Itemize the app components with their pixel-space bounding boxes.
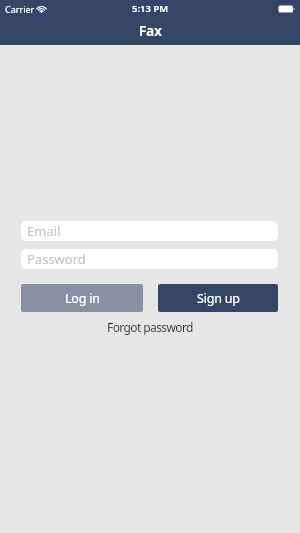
button[interactable]: Log in bbox=[21, 284, 143, 312]
button[interactable]: Sign up bbox=[158, 284, 278, 312]
staticText: Forgot password bbox=[107, 319, 193, 335]
staticText: 5:13 PM bbox=[132, 2, 169, 15]
staticText: Log in bbox=[65, 290, 100, 307]
staticText: Sign up bbox=[197, 290, 240, 307]
staticText: Email bbox=[27, 222, 61, 240]
staticText: Fax bbox=[139, 22, 162, 40]
staticText: Password bbox=[27, 250, 86, 268]
button[interactable]: Forgot password bbox=[103, 317, 197, 337]
button[interactable]: Email bbox=[21, 221, 278, 241]
staticText: Carrier bbox=[5, 3, 35, 15]
button[interactable]: Password bbox=[21, 249, 278, 269]
